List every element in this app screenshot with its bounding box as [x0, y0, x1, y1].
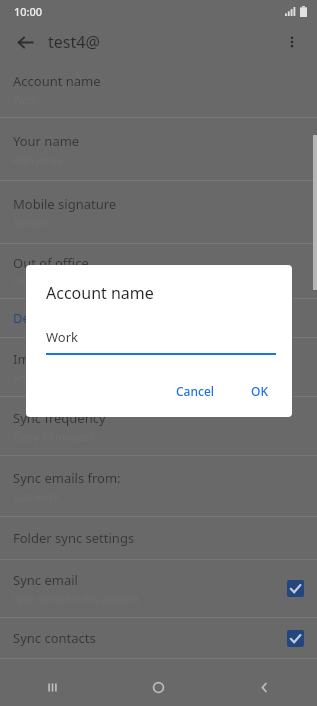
staticText: Account name: [46, 282, 154, 304]
staticText: Mobile signature: [13, 195, 117, 213]
staticText: Add contacts to this account: [13, 371, 146, 385]
button[interactable]: Cancel: [168, 375, 223, 407]
staticText: Import contacts: [13, 350, 111, 368]
staticText: Default account: [13, 309, 110, 327]
button[interactable]: Sync emails from:: [0, 456, 317, 517]
button[interactable]: Recent apps: [0, 668, 105, 706]
staticText: Sync frequency: [13, 409, 106, 427]
staticText: OK: [251, 383, 268, 399]
button[interactable]: Sync contacts: [0, 618, 317, 659]
button[interactable]: Your name: [0, 118, 317, 181]
button[interactable]: Mobile signature: [0, 181, 317, 244]
staticText: Cancel: [176, 383, 215, 399]
button[interactable]: Account name: [0, 62, 317, 118]
staticText: 10:00: [14, 4, 43, 19]
button[interactable]: Back: [211, 668, 317, 706]
staticText: Folder sync settings: [13, 529, 135, 547]
button[interactable]: Work: [46, 328, 276, 355]
button[interactable]: Out of office: [0, 244, 317, 299]
button[interactable]: Back: [10, 27, 40, 57]
staticText: Your name: [13, 132, 80, 150]
button[interactable]: Sync email: [0, 560, 317, 618]
button[interactable]: Default account: [0, 299, 317, 338]
staticText: Sync contacts: [13, 629, 96, 647]
staticText: Account name: [13, 72, 101, 90]
button[interactable]: Sync frequency: [0, 397, 317, 456]
staticText: Sync emails from:: [13, 469, 121, 487]
staticText: Work: [46, 328, 79, 346]
staticText: Off: [13, 275, 28, 289]
button[interactable]: Home: [105, 668, 211, 706]
button[interactable]: Folder sync settings: [0, 517, 317, 560]
staticText: Sync email: [13, 571, 78, 589]
button[interactable]: Import contacts: [0, 338, 317, 397]
staticText: test4@: [48, 31, 100, 53]
button[interactable]: More options: [277, 27, 307, 57]
button[interactable]: OK: [243, 375, 276, 407]
staticText: Out of office: [13, 254, 89, 272]
